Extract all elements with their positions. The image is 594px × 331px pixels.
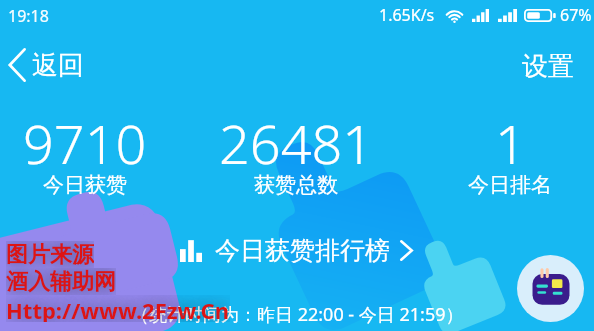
staticText: 图片来源 — [6, 241, 94, 268]
button[interactable]: 设置 — [510, 44, 586, 89]
staticText: 9710 — [23, 106, 147, 180]
staticText: 酒入辅助网 — [6, 268, 116, 295]
button[interactable]: 返回 — [4, 44, 92, 86]
staticText: 今日排名 — [468, 172, 552, 198]
staticText: 1 — [495, 106, 526, 180]
staticText: 67% — [560, 4, 592, 26]
staticText: 设置 — [522, 50, 574, 83]
staticText: 26481 — [219, 106, 374, 180]
staticText: 获赞总数 — [254, 172, 338, 198]
staticText: Http://www.2Fzw.Cn — [6, 295, 230, 322]
button[interactable]: 今日获赞排行榜 — [174, 231, 420, 270]
staticText: 今日获赞排行榜 — [215, 235, 390, 266]
staticText: （统计时间为：昨日 22:00 - 今日 21:59） — [131, 302, 464, 327]
staticText: 19:18 — [8, 5, 49, 27]
staticText: 返回 — [32, 49, 84, 82]
staticText: 今日获赞 — [43, 172, 127, 198]
button[interactable]: App logo — [517, 255, 584, 322]
staticText: 1.65K/s — [379, 4, 435, 26]
